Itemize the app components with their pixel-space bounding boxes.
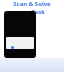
staticText: any Task (19, 8, 45, 16)
staticText: Scan & Solve (13, 0, 51, 8)
